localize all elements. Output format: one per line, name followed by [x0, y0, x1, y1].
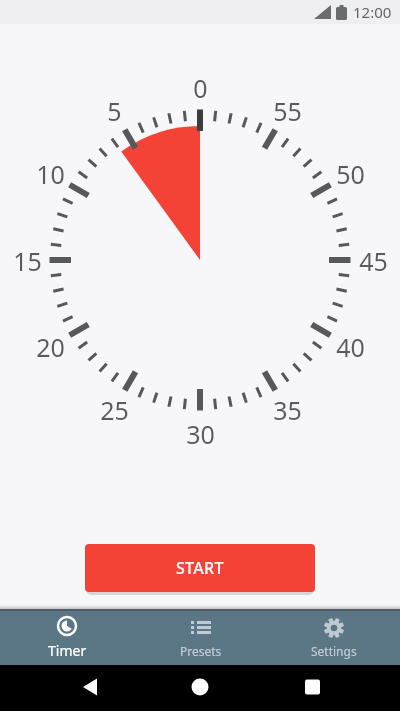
- staticText: START: [176, 557, 224, 579]
- staticText: 12:00: [353, 2, 392, 22]
- button[interactable]: Presets: [134, 609, 267, 665]
- staticText: 30: [186, 417, 215, 445]
- staticText: 50: [336, 157, 365, 185]
- button[interactable]: Timer: [0, 609, 134, 665]
- staticText: 40: [336, 330, 365, 358]
- staticText: 15: [13, 244, 42, 272]
- staticText: 25: [100, 393, 129, 421]
- staticText: 0: [193, 71, 208, 99]
- staticText: 55: [273, 94, 302, 122]
- staticText: Timer: [48, 641, 87, 660]
- staticText: 35: [273, 393, 302, 421]
- staticText: Presets: [180, 643, 222, 659]
- staticText: 10: [36, 157, 65, 185]
- staticText: Settings: [311, 643, 357, 659]
- staticText: 45: [359, 244, 388, 272]
- staticText: 5: [107, 94, 122, 122]
- button[interactable]: Settings: [267, 609, 400, 665]
- button[interactable]: START: [85, 544, 315, 592]
- staticText: 20: [36, 330, 65, 358]
